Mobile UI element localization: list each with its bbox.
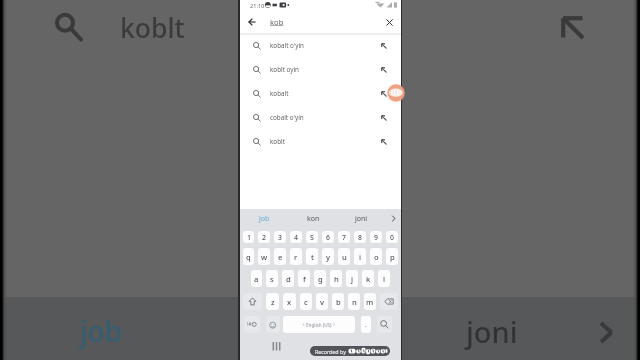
button[interactable]: Search [377, 316, 392, 333]
staticText: f [303, 274, 306, 284]
button[interactable]: More suggestions [385, 209, 401, 228]
staticText: 9 [374, 233, 378, 242]
button[interactable]: b [332, 293, 344, 310]
button[interactable]: i [354, 248, 366, 265]
button[interactable]: koblt oyin [240, 59, 401, 83]
button[interactable]: Emoji [266, 316, 280, 333]
button[interactable]: m [364, 293, 376, 310]
button[interactable]: 8 [354, 231, 366, 243]
button[interactable]: kobalt [240, 83, 401, 107]
button[interactable]: e [274, 248, 286, 265]
button[interactable]: joni [337, 209, 385, 228]
button[interactable]: u [338, 248, 350, 265]
staticText: cobalt o'yin [270, 113, 304, 122]
staticText: kon [307, 214, 320, 224]
button[interactable]: job [240, 209, 289, 228]
button[interactable]: Back [244, 14, 260, 30]
staticText: 6 [326, 233, 330, 242]
staticText: job [80, 312, 123, 350]
staticText: g [318, 274, 323, 284]
button[interactable]: 5 [306, 231, 318, 243]
button[interactable]: 1 [243, 231, 254, 243]
button[interactable]: k [362, 270, 374, 287]
button[interactable]: h [330, 270, 342, 287]
button[interactable]: koblt [240, 131, 401, 155]
button[interactable]: f [298, 270, 310, 287]
button[interactable]: Insert suggestion [375, 109, 393, 127]
button[interactable]: Insert suggestion [375, 37, 393, 55]
staticText: 1 [247, 233, 251, 242]
button[interactable]: d [282, 270, 294, 287]
button[interactable]: Insert suggestion [375, 61, 393, 79]
button[interactable]: t [306, 248, 318, 265]
button[interactable]: x [283, 293, 296, 310]
button[interactable]: 2 [258, 231, 270, 243]
staticText: 0 [390, 233, 394, 242]
button[interactable]: kon [289, 209, 337, 228]
button[interactable]: 0 [386, 231, 398, 243]
staticText: x [287, 297, 292, 307]
button[interactable]: q [243, 248, 254, 265]
button[interactable]: ‹ [283, 316, 355, 333]
staticText: . [365, 320, 367, 330]
button[interactable]: n [348, 293, 360, 310]
staticText: w [261, 252, 268, 262]
staticText: t [311, 252, 314, 262]
button[interactable]: 9 [370, 231, 382, 243]
button[interactable]: z [266, 293, 279, 310]
button[interactable]: kobalt o'yin [240, 35, 401, 59]
staticText: n [352, 297, 357, 307]
staticText: i [359, 252, 362, 262]
staticText: h [334, 274, 339, 284]
button[interactable]: . [361, 316, 371, 333]
staticText: Recorded by [315, 348, 346, 355]
button[interactable]: y [322, 248, 334, 265]
button[interactable]: 6 [322, 231, 334, 243]
staticText: !# [247, 321, 252, 328]
staticText: joni [355, 214, 368, 224]
button[interactable]: 3 [274, 231, 286, 243]
staticText: a [254, 274, 259, 284]
staticText: s [270, 274, 274, 284]
button[interactable]: 7 [338, 231, 350, 243]
button[interactable]: c [300, 293, 312, 310]
staticText: job [259, 214, 270, 224]
staticText: e [278, 252, 283, 262]
button[interactable]: j [346, 270, 358, 287]
button[interactable]: Backspace [380, 293, 398, 310]
button[interactable]: Insert suggestion [375, 85, 393, 103]
button[interactable]: cobalt o'yin [240, 107, 401, 131]
button[interactable]: s [266, 270, 278, 287]
staticText: 2 [262, 233, 266, 242]
button[interactable]: l [378, 270, 390, 287]
staticText: q [246, 252, 251, 262]
staticText: 8 [358, 233, 362, 242]
staticText: b [336, 297, 341, 307]
staticText: 7 [342, 233, 346, 242]
button[interactable]: g [314, 270, 326, 287]
button[interactable]: a [251, 270, 262, 287]
staticText: c [304, 297, 308, 307]
staticText: u [342, 252, 347, 262]
staticText: koblt [120, 10, 185, 46]
staticText: 21:10 [250, 2, 265, 10]
button[interactable]: Insert suggestion [375, 133, 393, 151]
staticText: l [383, 274, 386, 284]
button[interactable]: Shift [243, 293, 262, 310]
button[interactable]: 4 [290, 231, 302, 243]
staticText: kobalt [270, 89, 289, 98]
staticText: joni [466, 312, 518, 351]
button[interactable]: p [386, 248, 398, 265]
staticText: › [332, 321, 335, 328]
staticText: 5 [310, 233, 314, 242]
staticText: j [351, 274, 354, 284]
staticText: r [294, 252, 298, 262]
button[interactable]: r [290, 248, 302, 265]
button[interactable]: Symbols [244, 316, 260, 333]
staticText: koblt [270, 137, 285, 146]
staticText: y [326, 252, 331, 262]
button[interactable]: o [370, 248, 382, 265]
button[interactable]: w [258, 248, 270, 265]
button[interactable]: v [316, 293, 328, 310]
button[interactable]: Clear search [381, 14, 397, 30]
